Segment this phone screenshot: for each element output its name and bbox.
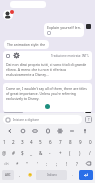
staticText: Traduzione mostrata: INT'L [51,54,89,58]
staticText: Come on, I wouldn't say all of them, the… [6,86,89,101]
staticText: - [49,150,51,156]
staticText: @ [2,150,7,156]
button[interactable]: 1 [0,136,9,147]
button[interactable]: & [36,147,45,158]
staticText: ' [37,161,38,167]
button[interactable]: + [55,147,65,158]
staticText: * [16,161,19,167]
button[interactable]: 9 [75,136,85,147]
staticText: ABC [5,173,11,177]
staticText: ! [66,161,68,167]
button[interactable]: ; [52,158,62,169]
staticText: / [89,150,91,156]
button[interactable]: ( [65,147,75,158]
staticText: 🙂 [28,173,33,177]
button[interactable]: ? [72,158,82,169]
staticText: 2 [12,139,15,145]
staticText: 8 [69,139,72,145]
button[interactable]: @ [0,147,9,158]
staticText: # [12,150,15,156]
button[interactable]: Space [36,170,67,180]
staticText: 7 [59,139,62,145]
button[interactable]: Traduco [4,112,23,113]
button[interactable]: Profile avatar [3,10,13,20]
button[interactable]: Add [84,112,91,113]
button[interactable]: GIF [31,127,39,135]
staticText: : [46,161,48,167]
button[interactable]: Emoji [25,169,35,181]
button[interactable]: 3 [18,136,27,147]
button[interactable]: Text mode [85,116,92,123]
staticText: T [88,118,90,122]
staticText: & [39,150,43,156]
button[interactable]: =\< [0,158,12,169]
button[interactable]: Enter [79,170,93,180]
staticText: $ [21,150,24,156]
button[interactable]: 6 [45,136,55,147]
button[interactable]: Voice input [81,127,89,135]
staticText: ; [56,161,58,167]
button[interactable]: 7 [55,136,65,147]
staticText: =\< [4,162,9,166]
staticText: Explain yourself len. [47,25,81,30]
staticText: ? [76,161,78,167]
button[interactable]: : [42,158,52,169]
staticText: The animation style: the [7,42,46,47]
button[interactable]: ! [62,158,72,169]
staticText: Italiano [47,173,57,177]
staticText: . [72,172,74,178]
button[interactable]: ) [75,147,85,158]
button[interactable]: Previous [6,127,14,135]
staticText: 1 [3,139,6,145]
button[interactable]: Close [3,51,92,80]
button[interactable]: 0 [85,136,95,147]
button[interactable]: _ [27,147,36,158]
button[interactable]: Iniziare a digitare [3,115,82,124]
button[interactable]: ' [32,158,42,169]
button[interactable]: Stickers [19,127,27,135]
button[interactable]: Explain yourself len. [44,23,84,37]
staticText: _ [30,150,33,156]
button[interactable]: - [45,147,55,158]
staticText: Dai non dirai proprio tutti, ci sono tit… [6,62,89,77]
button[interactable]: Backspace [82,158,95,169]
button[interactable]: " [22,158,32,169]
button[interactable]: 2 [9,136,18,147]
staticText: , [19,172,21,178]
button[interactable]: ABC [2,170,14,180]
button[interactable]: $ [18,147,27,158]
staticText: 4 [30,139,33,145]
staticText: + [59,150,62,156]
button[interactable]: 4 [27,136,36,147]
button[interactable]: Come on, I wouldn't say all of them, the… [3,83,92,112]
button[interactable]: Settings [14,53,19,58]
button[interactable]: * [12,158,22,169]
staticText: Iniziare a digitare [13,118,40,122]
staticText: ) [79,150,81,156]
staticText: " [26,161,28,167]
button[interactable]: # [9,147,18,158]
staticText: 6 [49,139,52,145]
staticText: 0 [89,139,92,145]
button[interactable]: / [85,147,95,158]
staticText: 5 [39,139,42,145]
staticText: 3 [21,139,24,145]
staticText: 9 [79,139,82,145]
button[interactable]: Close [6,54,10,58]
staticText: ( [69,150,71,156]
button[interactable]: 5 [36,136,45,147]
button[interactable]: , [15,169,25,181]
button[interactable] [10,1,46,8]
button[interactable]: 8 [65,136,75,147]
button[interactable]: Settings [56,127,64,135]
button[interactable]: More [68,127,76,135]
button[interactable]: Clipboard [44,127,52,135]
button[interactable]: The animation style: the [4,40,49,49]
